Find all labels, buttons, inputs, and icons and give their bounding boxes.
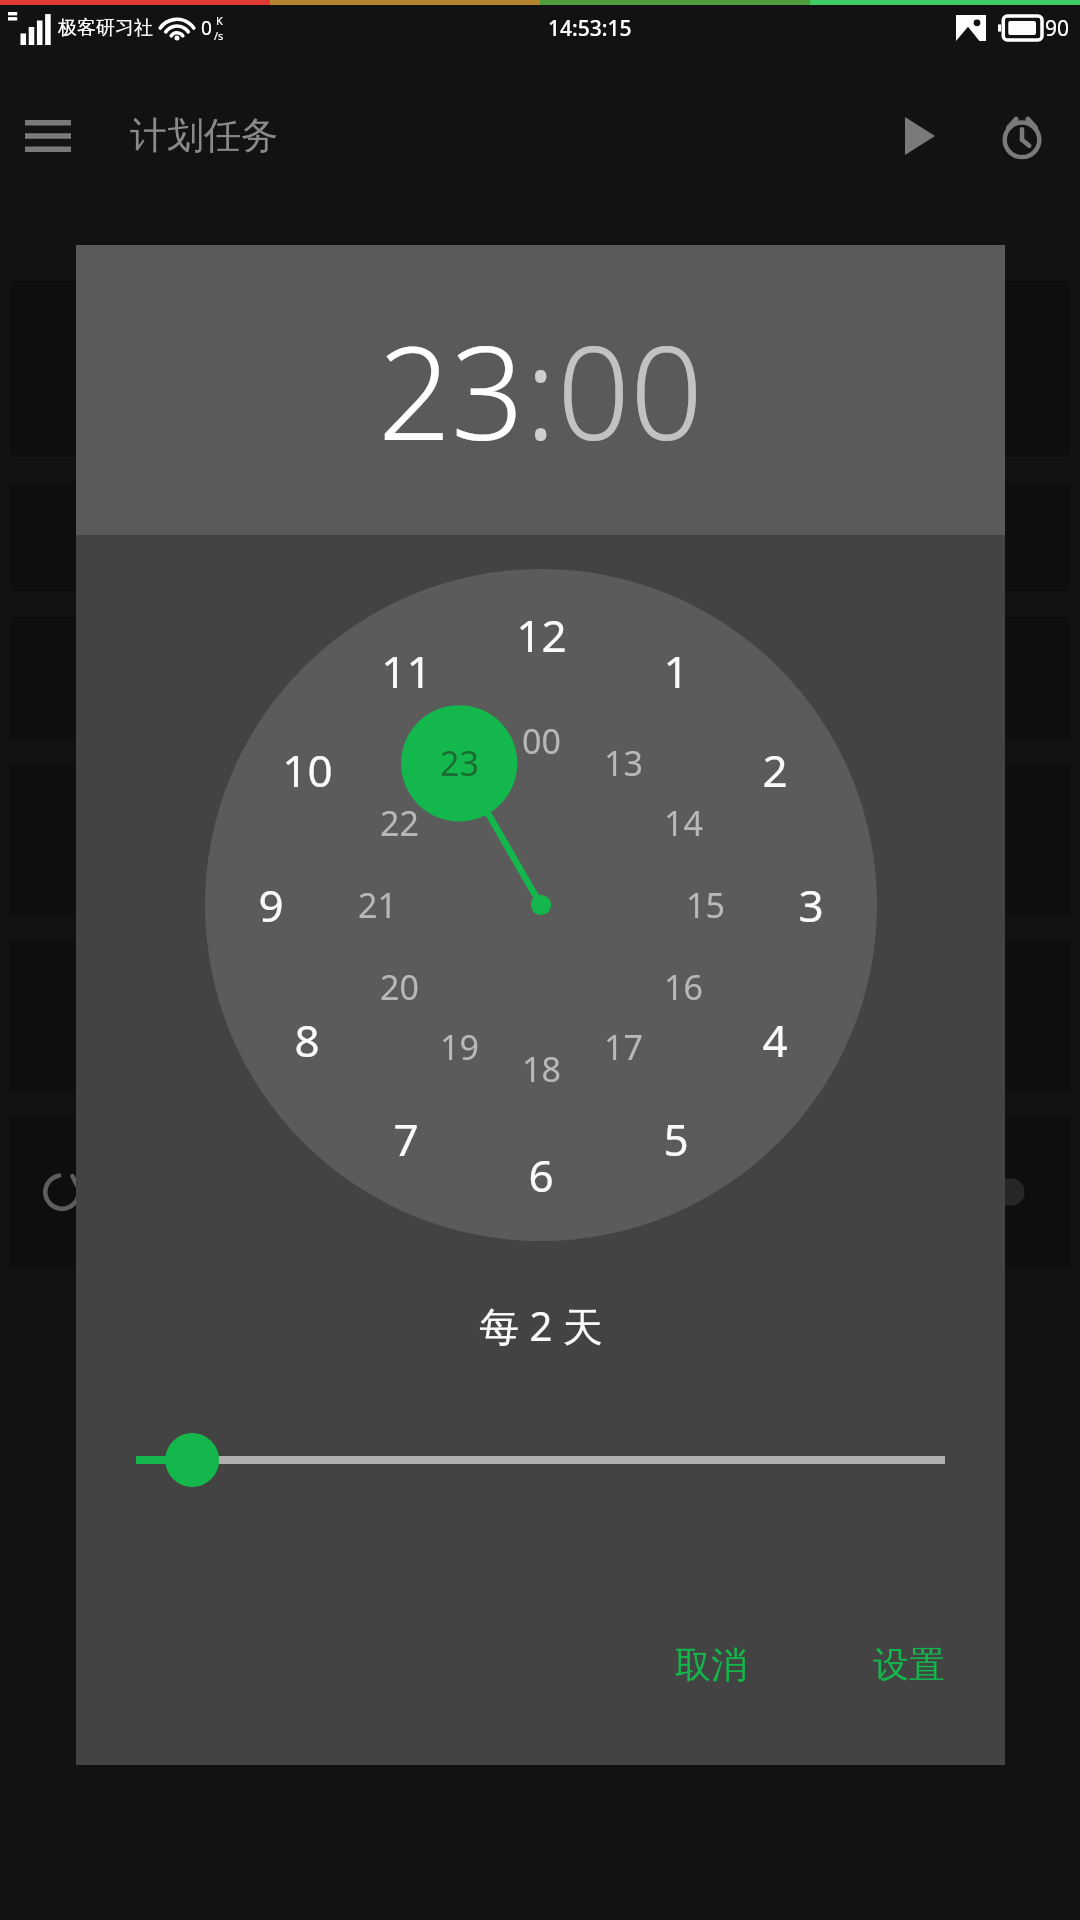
button[interactable]: 取消 <box>651 1626 771 1703</box>
staticText: 17 <box>604 1024 643 1070</box>
staticText: 90 <box>1045 14 1070 43</box>
staticText: 18 <box>522 1046 561 1092</box>
staticText: 22 <box>380 800 419 846</box>
button[interactable]: Alarm <box>974 88 1070 184</box>
button[interactable] <box>76 1375 1005 1545</box>
button[interactable]: 23 <box>378 303 525 477</box>
staticText: 6 <box>528 1145 554 1205</box>
button[interactable]: Hour picker <box>205 569 877 1241</box>
staticText: 20 <box>380 964 419 1010</box>
staticText: 21 <box>358 882 397 928</box>
button[interactable] <box>10 483 1070 591</box>
staticText: 13 <box>604 740 643 786</box>
staticText: 14 <box>664 800 703 846</box>
button[interactable]: 00 <box>557 303 704 477</box>
staticText: 1 <box>663 641 689 701</box>
staticText: 2 <box>762 740 788 800</box>
staticText: 计划任务 <box>130 112 278 159</box>
button[interactable] <box>944 1168 1040 1216</box>
staticText: 极客研习社 <box>58 16 153 40</box>
staticText: 00 <box>522 718 561 764</box>
staticText: 7 <box>393 1109 419 1169</box>
staticText: 5 <box>663 1109 689 1169</box>
staticText: 10 <box>282 740 333 800</box>
staticText: 19 <box>440 1024 479 1070</box>
button[interactable] <box>10 765 1070 915</box>
button[interactable]: Run <box>872 88 968 184</box>
staticText: : <box>525 303 557 477</box>
staticText: /s <box>214 28 224 43</box>
staticText: 0 <box>201 15 212 41</box>
staticText: 9 <box>258 875 284 935</box>
button[interactable]: 重启 <box>10 1117 1070 1267</box>
staticText: 23 <box>440 740 479 786</box>
staticText: 每 2 天 <box>479 1298 603 1353</box>
button[interactable] <box>10 941 1070 1091</box>
staticText: 14:53:15 <box>548 14 632 43</box>
button[interactable] <box>10 281 1070 457</box>
staticText: 设置 <box>873 1642 945 1687</box>
staticText: 23 <box>378 303 525 477</box>
staticText: 00 <box>557 303 704 477</box>
button[interactable]: 设置 <box>849 1626 969 1703</box>
staticText: 4 <box>762 1010 788 1070</box>
staticText: K <box>216 13 223 28</box>
staticText: 3 <box>798 875 824 935</box>
staticText: 8 <box>294 1010 320 1070</box>
staticText: 15 <box>686 882 725 928</box>
button[interactable]: Menu <box>0 88 96 184</box>
staticText: 11 <box>381 641 432 701</box>
staticText: 16 <box>664 964 703 1010</box>
staticText: 取消 <box>675 1642 747 1687</box>
staticText: 12 <box>516 605 567 665</box>
button[interactable] <box>10 617 1070 739</box>
